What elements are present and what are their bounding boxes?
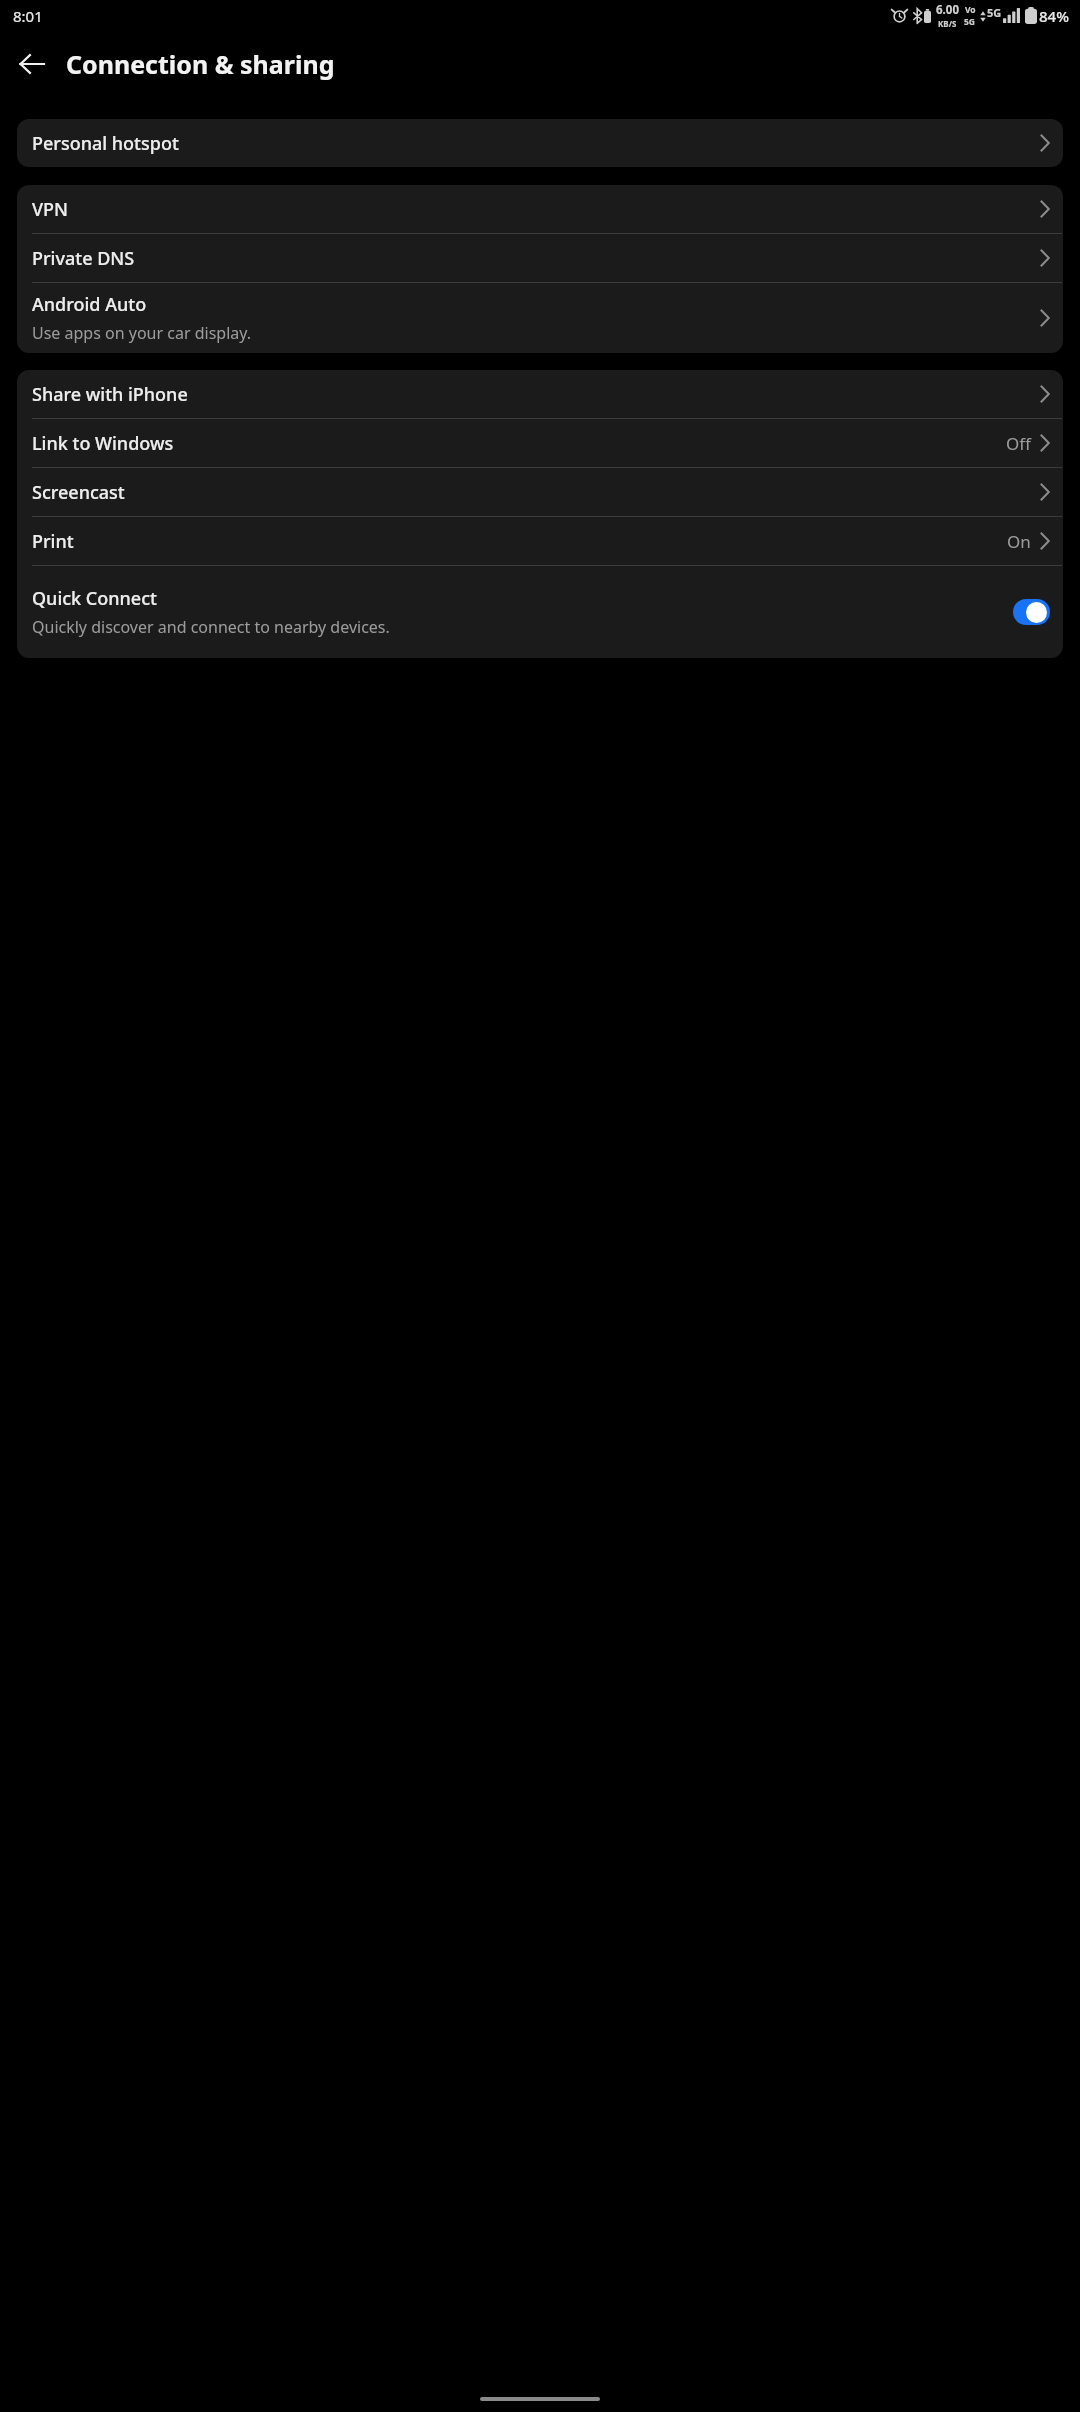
- button[interactable]: Print: [17, 517, 1063, 565]
- button[interactable]: Personal hotspot: [17, 119, 1063, 167]
- staticText: Quickly discover and connect to nearby d…: [32, 616, 390, 638]
- staticText: 84%: [1039, 6, 1069, 26]
- button[interactable]: Private DNS: [17, 234, 1063, 282]
- staticText: On: [1007, 530, 1031, 553]
- staticText: KB/S: [938, 18, 957, 29]
- button[interactable]: Screencast: [17, 468, 1063, 516]
- staticText: Link to Windows: [32, 431, 174, 456]
- staticText: Android Auto: [32, 292, 147, 317]
- button[interactable]: Quick Connect: [17, 566, 1063, 658]
- button[interactable]: Share with iPhone: [17, 370, 1063, 418]
- button[interactable]: Quick Connect toggle, on: [1013, 599, 1050, 625]
- button[interactable]: VPN: [17, 185, 1063, 233]
- staticText: Vo: [965, 4, 976, 16]
- staticText: 6.00: [936, 2, 959, 18]
- staticText: Share with iPhone: [32, 382, 188, 407]
- staticText: Screencast: [32, 480, 125, 505]
- staticText: Private DNS: [32, 246, 135, 271]
- staticText: Use apps on your car display.: [32, 322, 252, 344]
- staticText: Connection & sharing: [66, 47, 335, 81]
- staticText: Personal hotspot: [32, 131, 179, 156]
- staticText: Off: [1006, 432, 1031, 455]
- staticText: 5G: [987, 5, 1002, 20]
- staticText: Quick Connect: [32, 586, 157, 611]
- button[interactable]: Back: [6, 38, 58, 90]
- button[interactable]: Android Auto: [17, 283, 1063, 353]
- staticText: 8:01: [13, 6, 43, 26]
- staticText: VPN: [32, 197, 69, 222]
- button[interactable]: Link to Windows: [17, 419, 1063, 467]
- staticText: Print: [32, 529, 74, 554]
- staticText: 5G: [964, 16, 976, 28]
